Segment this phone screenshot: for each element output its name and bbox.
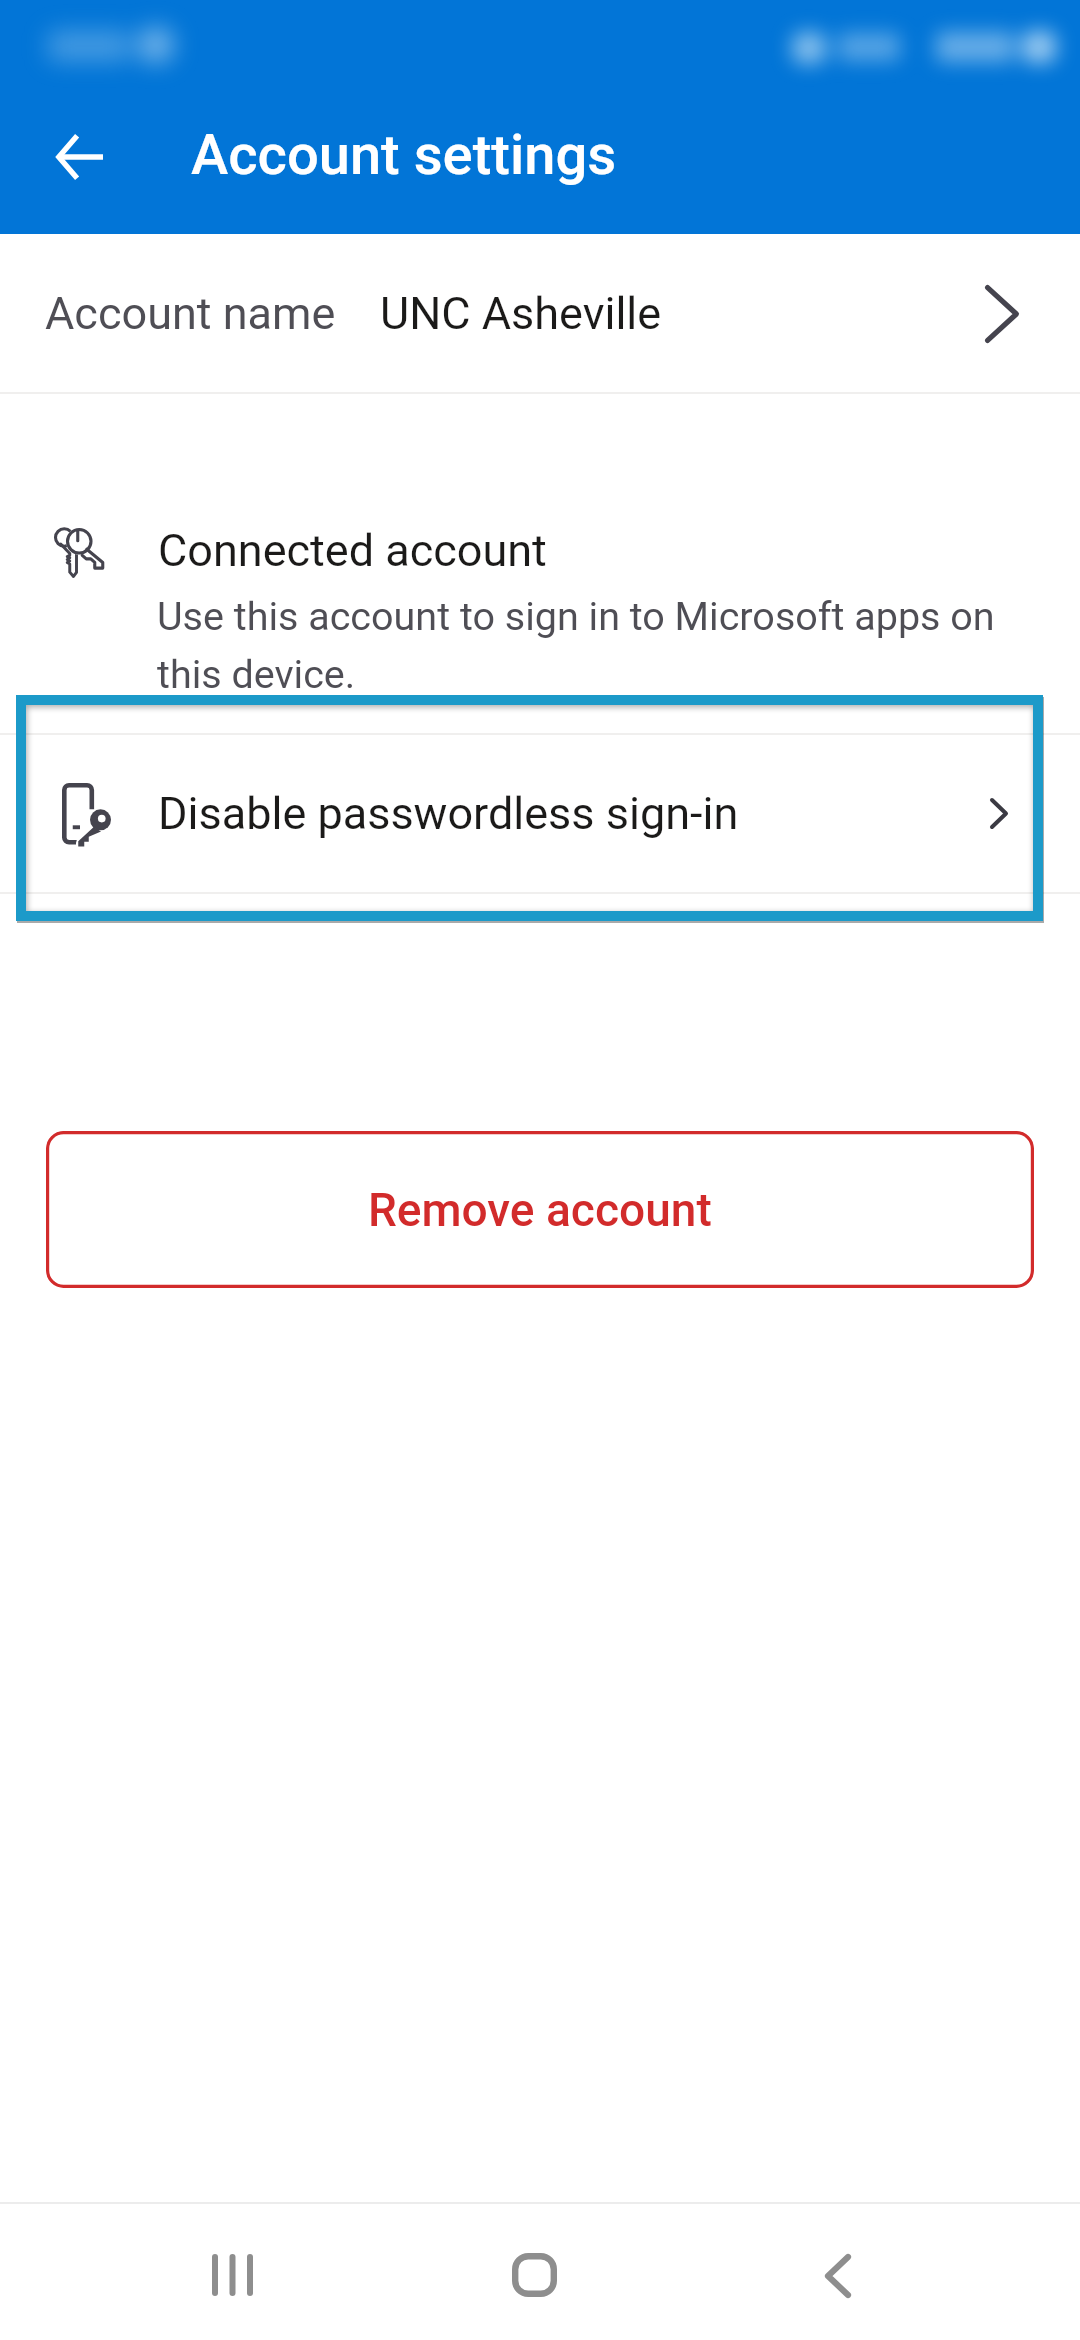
staticText: Remove account (368, 1183, 712, 1237)
staticText: Use this account to sign in to Microsoft… (157, 593, 1002, 698)
button[interactable]: Account name (0, 234, 1080, 393)
staticText: UNC Asheville (380, 287, 662, 340)
staticText: Connected account (158, 524, 547, 577)
button[interactable]: Recent apps (172, 2212, 292, 2338)
button[interactable]: Back (782, 2212, 894, 2340)
staticText: Account settings (191, 122, 617, 188)
staticText: Account name (45, 287, 336, 340)
button[interactable]: Disable passwordless sign-in (0, 733, 1080, 893)
button[interactable]: Home (468, 2212, 600, 2338)
button[interactable]: Navigate up (32, 109, 128, 205)
staticText: Disable passwordless sign-in (158, 787, 739, 840)
button[interactable]: Remove account (46, 1131, 1034, 1288)
